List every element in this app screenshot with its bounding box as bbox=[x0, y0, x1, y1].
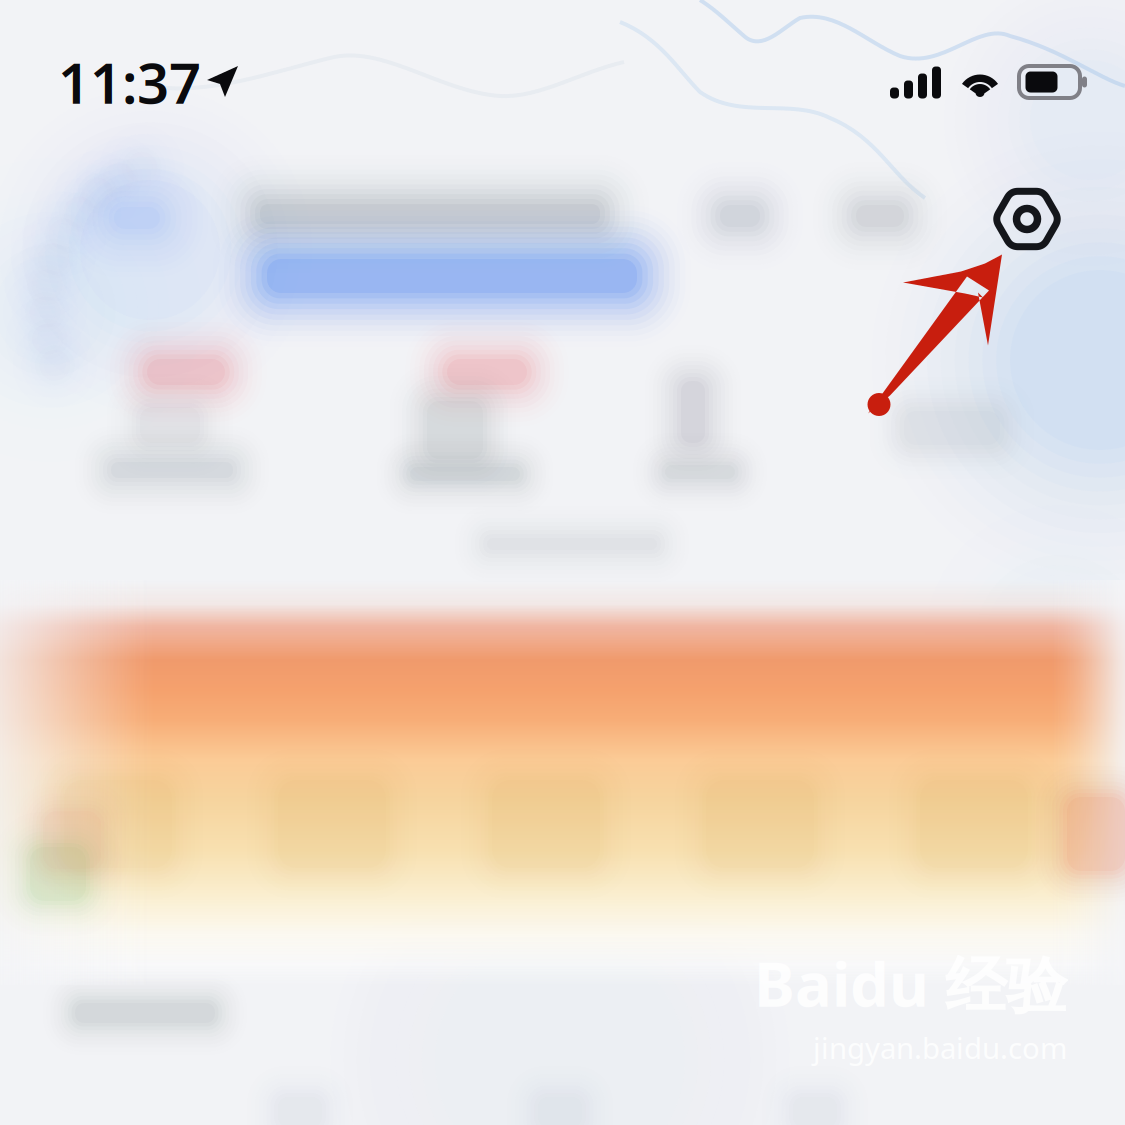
staticText: 11:37 bbox=[58, 45, 201, 119]
button[interactable]: Settings bbox=[975, 167, 1079, 271]
staticText: Baidu 经验 bbox=[754, 942, 1067, 1024]
staticText: jingyan.baidu.com bbox=[813, 1028, 1067, 1067]
